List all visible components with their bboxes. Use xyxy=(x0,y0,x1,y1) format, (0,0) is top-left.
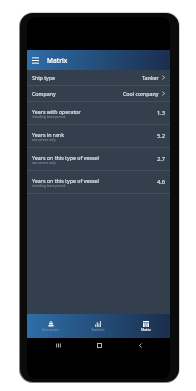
button[interactable]: Years with operator xyxy=(27,102,170,125)
staticText: Ship type xyxy=(32,74,56,81)
staticText: 4.6 xyxy=(157,178,166,186)
staticText: sea service only xyxy=(32,161,56,165)
staticText: 5.2 xyxy=(157,132,166,140)
button[interactable]: Company xyxy=(27,86,170,102)
staticText: Years in rank xyxy=(32,131,64,138)
button[interactable]: Home xyxy=(96,342,103,349)
staticText: Years with operator xyxy=(32,108,81,115)
staticText: Matrix xyxy=(47,56,68,65)
button[interactable]: Ship type xyxy=(27,70,170,86)
staticText: sea service only xyxy=(32,138,56,142)
button[interactable]: Years in rank xyxy=(27,125,170,148)
staticText: 2.7 xyxy=(157,155,166,163)
button[interactable]: Years on this type of vessel xyxy=(27,148,170,171)
staticText: Years on this type of vessel xyxy=(32,177,99,184)
button[interactable]: Statistics xyxy=(74,314,122,338)
button[interactable]: Recents xyxy=(55,342,62,349)
button[interactable]: Sea service xyxy=(27,314,74,338)
staticText: Cool company xyxy=(123,90,159,97)
button[interactable]: Years on this type of vessel xyxy=(27,171,170,194)
button[interactable]: Open navigation menu xyxy=(29,54,41,66)
button[interactable]: Matrix xyxy=(122,314,170,338)
staticText: Statistics xyxy=(91,328,105,332)
staticText: 1.3 xyxy=(157,109,166,117)
staticText: Company xyxy=(32,90,56,97)
staticText: including leave period xyxy=(32,115,66,119)
button[interactable]: Back xyxy=(137,342,144,349)
staticText: Matrix xyxy=(141,328,151,332)
staticText: Tanker xyxy=(142,74,159,81)
staticText: including leave period xyxy=(32,184,66,188)
staticText: Years on this type of vessel xyxy=(32,154,99,161)
staticText: Sea service xyxy=(42,328,59,332)
